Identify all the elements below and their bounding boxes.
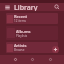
button[interactable]: Menu <box>4 4 11 11</box>
staticText: 12 items <box>14 19 27 23</box>
staticText: Recent <box>14 14 28 19</box>
button[interactable]: Search <box>29 55 35 64</box>
staticText: Browse <box>14 48 25 52</box>
button[interactable]: Albums <box>6 26 58 40</box>
button[interactable]: Saved <box>47 55 53 64</box>
staticText: Library <box>14 3 54 11</box>
button[interactable]: Recent <box>6 13 58 24</box>
staticText: Playlists <box>16 34 28 38</box>
button[interactable]: Artists <box>6 42 58 53</box>
button[interactable]: Search <box>54 4 60 10</box>
button[interactable]: Home <box>12 55 18 64</box>
staticText: Artists <box>14 43 27 48</box>
button[interactable]: Add <box>52 46 59 53</box>
staticText: Albums <box>16 29 31 34</box>
